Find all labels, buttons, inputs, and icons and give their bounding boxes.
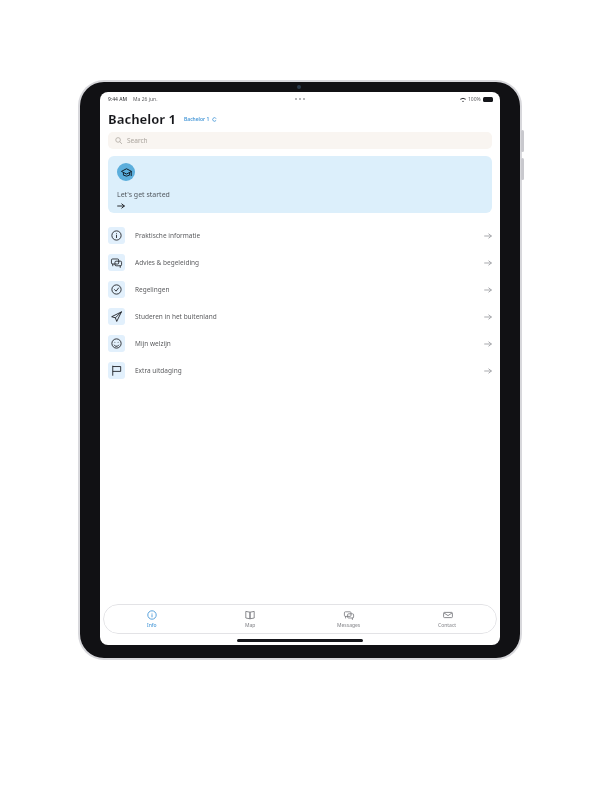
staticText: Info [147,622,157,629]
staticText: Mijn welzijn [135,339,171,348]
staticText: Praktische informatie [135,231,201,240]
button[interactable]: Studeren in het buitenland [100,303,500,330]
staticText: Studeren in het buitenland [135,312,217,321]
staticText: Regelingen [135,285,170,294]
button[interactable]: Info [103,607,201,632]
button[interactable]: Praktische informatie [100,222,500,249]
button[interactable]: Bachelor 1 [183,114,218,125]
button[interactable]: Advies & begeleiding [100,249,500,276]
staticText: Advies & begeleiding [135,258,200,267]
staticText: Ma 26 jun. [133,96,158,103]
staticText: Bachelor 1 [108,110,176,128]
staticText: Extra uitdaging [135,366,182,375]
button[interactable]: Extra uitdaging [100,357,500,384]
staticText: Let's get started [117,190,170,200]
staticText: Contact [438,622,457,629]
button[interactable]: Map [201,607,299,632]
button[interactable]: Mijn welzijn [100,330,500,357]
button[interactable]: Let's get started [108,156,492,213]
staticText: Messages [337,622,361,629]
button[interactable]: Regelingen [100,276,500,303]
staticText: Bachelor 1 [184,116,210,123]
button[interactable]: Search [108,132,492,149]
staticText: Search [127,136,148,145]
button[interactable]: Contact [398,607,497,632]
staticText: 9:44 AM [108,96,128,103]
button[interactable]: Messages [299,607,398,632]
staticText: 100% [468,96,481,103]
staticText: Map [245,622,256,629]
